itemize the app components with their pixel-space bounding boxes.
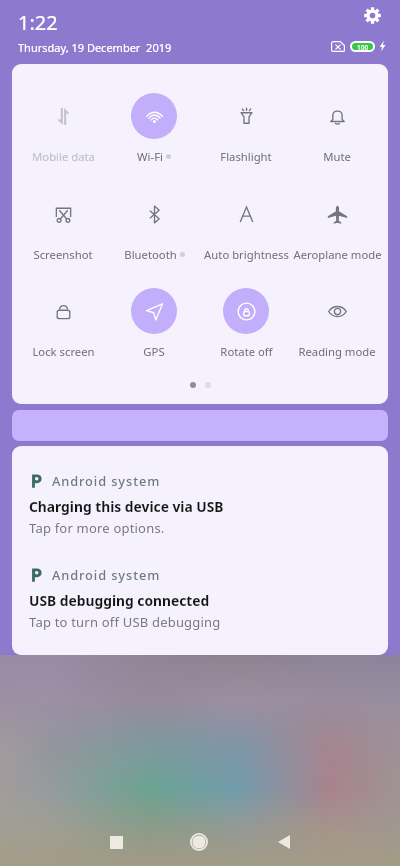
button[interactable]: Android system bbox=[12, 540, 388, 634]
button[interactable]: Rotate off bbox=[186, 288, 306, 359]
button[interactable]: GPS bbox=[94, 288, 214, 359]
staticText: Tap to turn off USB debugging bbox=[29, 613, 221, 631]
button[interactable]: Back bbox=[262, 820, 306, 864]
staticText: Android system bbox=[52, 566, 161, 583]
staticText: Mute bbox=[323, 149, 351, 164]
staticText: Lock screen bbox=[32, 344, 95, 359]
button[interactable]: Flashlight bbox=[186, 93, 306, 164]
staticText: Charging this device via USB bbox=[29, 497, 224, 516]
button[interactable]: Screenshot bbox=[12, 191, 123, 262]
staticText: Rotate off bbox=[220, 344, 273, 359]
staticText: Screenshot bbox=[33, 247, 93, 262]
button[interactable]: Wi-Fi bbox=[94, 93, 214, 164]
button[interactable]: Home bbox=[177, 820, 221, 864]
staticText: Thursday, 19 December 2019 bbox=[18, 40, 172, 55]
button[interactable]: Bluetooth bbox=[94, 191, 214, 262]
staticText: Wi-Fi bbox=[137, 149, 163, 164]
button[interactable]: Settings bbox=[358, 1, 386, 29]
staticText: Android system bbox=[52, 472, 161, 489]
button[interactable]: Reading mode bbox=[277, 288, 388, 359]
staticText: USB debugging connected bbox=[29, 591, 210, 610]
staticText: 100 bbox=[357, 43, 369, 50]
button[interactable]: Recent apps bbox=[94, 820, 138, 864]
button[interactable]: Auto brightness bbox=[186, 191, 306, 262]
staticText: GPS bbox=[143, 344, 165, 359]
button[interactable]: Aeroplane mode bbox=[277, 191, 388, 262]
staticText: 1:22 bbox=[18, 9, 58, 36]
button[interactable]: Lock screen bbox=[12, 288, 123, 359]
button[interactable]: Mobile data bbox=[12, 93, 123, 164]
staticText: Auto brightness bbox=[204, 247, 289, 262]
staticText: Reading mode bbox=[298, 344, 376, 359]
staticText: Flashlight bbox=[220, 149, 272, 164]
button[interactable]: Brightness bbox=[12, 410, 388, 441]
staticText: Mobile data bbox=[32, 149, 95, 164]
button[interactable]: Android system bbox=[12, 446, 388, 540]
staticText: Tap for more options. bbox=[29, 519, 165, 537]
staticText: Bluetooth bbox=[124, 247, 177, 262]
button[interactable]: Mute bbox=[277, 93, 388, 164]
staticText: Aeroplane mode bbox=[293, 247, 382, 262]
